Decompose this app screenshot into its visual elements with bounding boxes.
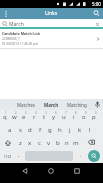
staticText: p — [92, 113, 96, 121]
staticText: 229800XX_1 — [2, 37, 20, 41]
staticText: l — [89, 126, 91, 134]
button[interactable]: v — [44, 136, 53, 149]
button[interactable] — [88, 150, 100, 162]
staticText: 3 — [25, 111, 27, 115]
staticText: z — [19, 139, 22, 147]
staticText: 0 — [95, 111, 97, 115]
staticText: a — [8, 126, 12, 134]
button[interactable]: ?123 — [1, 149, 14, 163]
button[interactable]: r — [29, 110, 39, 123]
staticText: k — [78, 126, 82, 134]
staticText: o — [82, 113, 86, 121]
staticText: March — [44, 102, 59, 108]
button[interactable]: a — [5, 123, 15, 136]
button[interactable]: March — [0, 19, 103, 29]
staticText: r — [33, 113, 36, 121]
staticText: March — [9, 21, 24, 28]
button[interactable]: n — [62, 136, 71, 149]
button[interactable] — [93, 10, 100, 17]
button[interactable]: s — [15, 123, 25, 136]
staticText: . — [80, 152, 82, 159]
button[interactable]: l — [85, 123, 95, 136]
button[interactable]: j — [65, 123, 75, 136]
button[interactable]: h — [55, 123, 65, 136]
staticText: v — [47, 139, 51, 147]
staticText: 8 — [75, 111, 77, 115]
button[interactable]: c — [35, 136, 44, 149]
staticText: 9 — [85, 111, 87, 115]
button[interactable]: March — [38, 99, 64, 110]
staticText: h — [58, 126, 62, 134]
staticText: 01/30/2013 11:46:45 pm — [2, 42, 39, 46]
button[interactable] — [92, 99, 103, 110]
button[interactable]: Candidate Match Link — [0, 29, 103, 48]
staticText: , — [18, 152, 20, 159]
button[interactable] — [20, 166, 30, 176]
staticText: 1 — [5, 111, 7, 115]
staticText: y — [52, 113, 56, 121]
staticText: q — [3, 113, 7, 121]
staticText: 5:00 — [92, 1, 101, 7]
staticText: Links — [45, 10, 58, 17]
button[interactable]: d — [25, 123, 35, 136]
button[interactable]: z — [15, 136, 25, 149]
staticText: 6 — [55, 111, 57, 115]
button[interactable]: u — [59, 110, 69, 123]
button[interactable] — [46, 166, 56, 176]
staticText: f — [39, 126, 42, 134]
button[interactable]: Matching — [64, 99, 90, 110]
staticText: Matches — [17, 102, 35, 108]
staticText: i — [73, 113, 75, 121]
staticText: e — [22, 113, 26, 121]
staticText: 5 — [45, 111, 47, 115]
button[interactable]: m — [71, 136, 80, 149]
button[interactable]: k — [75, 123, 85, 136]
button[interactable]: o — [79, 110, 89, 123]
button[interactable] — [72, 166, 82, 176]
button[interactable] — [80, 136, 103, 149]
button[interactable]: q — [0, 110, 9, 123]
staticText: Candidate Match Link — [2, 31, 41, 36]
staticText: 7 — [65, 111, 67, 115]
button[interactable]: Matches — [13, 99, 39, 110]
staticText: c — [38, 139, 41, 147]
staticText: ?123 — [4, 154, 12, 159]
button[interactable]: t — [39, 110, 49, 123]
button[interactable]: b — [53, 136, 62, 149]
staticText: 2 — [15, 111, 17, 115]
staticText: b — [56, 139, 60, 147]
button[interactable]: p — [89, 110, 99, 123]
staticText: x — [28, 139, 32, 147]
staticText: m — [73, 139, 79, 147]
staticText: j — [69, 126, 71, 134]
button[interactable] — [4, 11, 10, 17]
staticText: t — [43, 113, 46, 121]
staticText: d — [28, 126, 32, 134]
staticText: g — [48, 126, 52, 134]
staticText: w — [12, 113, 17, 121]
staticText: u — [62, 113, 66, 121]
button[interactable]: y — [49, 110, 59, 123]
staticText: Matching — [67, 102, 87, 108]
button[interactable]: e — [19, 110, 29, 123]
staticText: n — [65, 139, 69, 147]
staticText: s — [19, 126, 22, 134]
button[interactable]: w — [9, 110, 19, 123]
button[interactable] — [0, 136, 15, 149]
staticText: 4 — [35, 111, 37, 115]
button[interactable]: i — [69, 110, 79, 123]
button[interactable]: x — [25, 136, 35, 149]
button[interactable]: f — [35, 123, 45, 136]
button[interactable]: g — [45, 123, 55, 136]
